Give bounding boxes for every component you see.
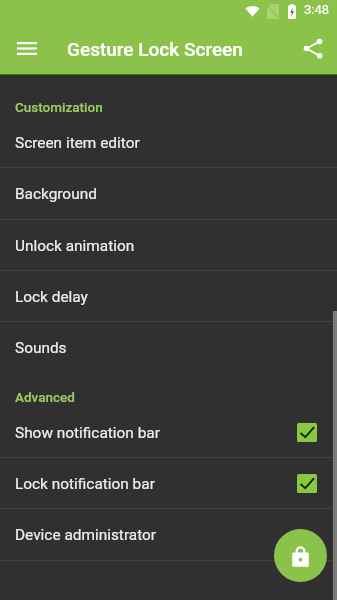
button[interactable]: Share	[289, 24, 337, 72]
staticText: Show notification bar	[15, 424, 297, 442]
button[interactable]: Lock notification bar	[0, 457, 337, 508]
button[interactable]: Toggle Lock notification bar	[297, 474, 317, 493]
button[interactable]: Lock	[274, 529, 327, 582]
button[interactable]: Lock delay	[0, 270, 337, 321]
staticText: Unlock animation	[15, 237, 337, 255]
button[interactable]: Device administrator	[0, 508, 337, 560]
staticText: Lock notification bar	[15, 475, 297, 493]
staticText: Sounds	[15, 339, 337, 357]
button[interactable]: Toggle Show notification bar	[297, 423, 317, 442]
staticText: Device administrator	[15, 526, 337, 544]
button[interactable]: Show notification bar	[0, 406, 337, 457]
staticText: Screen item editor	[15, 134, 337, 152]
staticText: Background	[15, 185, 337, 203]
button[interactable]: Background	[0, 167, 337, 219]
button[interactable]: Unlock animation	[0, 219, 337, 270]
staticText: 3:48	[304, 2, 330, 17]
staticText: Gesture Lock Screen	[67, 38, 243, 60]
button[interactable]: Open navigation menu	[2, 25, 50, 73]
staticText: Lock delay	[15, 288, 337, 306]
button[interactable]: Screen item editor	[0, 116, 337, 167]
staticText: Advanced	[15, 389, 75, 405]
staticText: Customization	[15, 99, 103, 115]
button[interactable]: Sounds	[0, 321, 337, 372]
